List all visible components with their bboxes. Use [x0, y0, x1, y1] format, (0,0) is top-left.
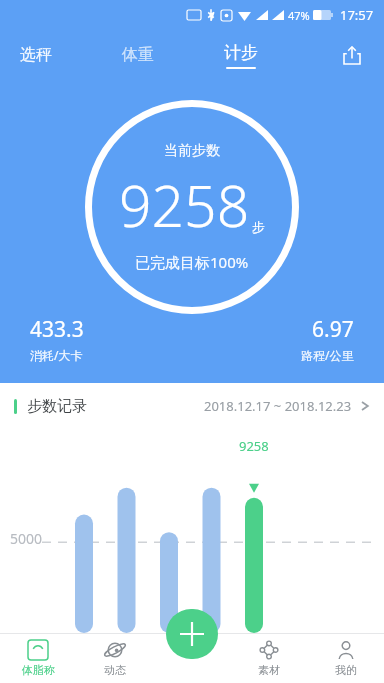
- staticText: 动态: [104, 663, 126, 677]
- staticText: 步: [252, 219, 265, 235]
- button[interactable]: 计步: [218, 38, 264, 73]
- button[interactable]: Add: [166, 609, 218, 659]
- button[interactable]: 我的: [307, 633, 384, 683]
- staticText: 5000: [10, 529, 43, 548]
- staticText: 9258: [239, 437, 269, 455]
- button[interactable]: 动态: [76, 633, 153, 683]
- staticText: 9258: [119, 166, 250, 244]
- staticText: 选秤: [20, 45, 52, 65]
- staticText: 47%: [288, 8, 310, 23]
- button[interactable]: 素材: [230, 633, 307, 683]
- staticText: 消耗/大卡: [30, 347, 83, 363]
- button[interactable]: 步数记录: [0, 383, 384, 429]
- staticText: 17:57: [340, 6, 374, 24]
- staticText: 路程/公里: [301, 347, 354, 363]
- staticText: 2018.12.17 ~ 2018.12.23: [204, 397, 352, 415]
- staticText: 体脂称: [22, 663, 55, 677]
- staticText: 6.97: [312, 315, 354, 344]
- staticText: 体重: [122, 45, 154, 65]
- button[interactable]: 体脂称: [0, 633, 76, 683]
- staticText: 当前步数: [164, 142, 220, 160]
- button[interactable]: 选秤: [14, 39, 58, 71]
- staticText: 已完成目标100%: [135, 252, 249, 272]
- staticText: 我的: [335, 663, 357, 677]
- staticText: 433.3: [30, 315, 84, 344]
- staticText: 素材: [258, 663, 280, 677]
- button[interactable]: 体重: [116, 39, 160, 71]
- button[interactable]: Share: [334, 37, 370, 73]
- staticText: 步数记录: [27, 397, 87, 416]
- staticText: 计步: [224, 42, 258, 63]
